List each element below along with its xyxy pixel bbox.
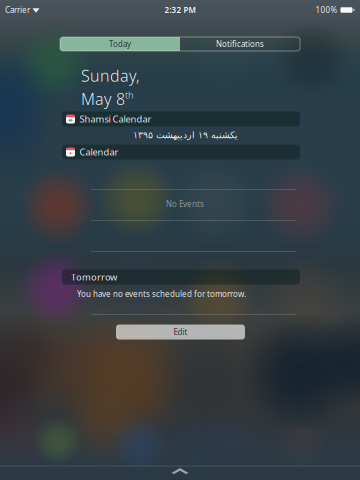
button[interactable]: Shamsi Calendar <box>62 111 300 126</box>
staticText: No Events <box>166 199 204 209</box>
button[interactable]: Today <box>60 37 180 51</box>
staticText: Sunday, <box>81 65 140 86</box>
staticText: Shamsi Calendar <box>79 113 151 125</box>
staticText: Notifications <box>216 39 264 49</box>
staticText: Carrier <box>5 5 30 15</box>
button[interactable]: Edit <box>116 324 245 339</box>
staticText: Today <box>109 39 131 49</box>
staticText: Edit <box>173 327 187 337</box>
staticText: 100% <box>315 5 337 15</box>
staticText: Tomorrow <box>71 271 117 283</box>
staticText: May 8 <box>81 88 125 109</box>
button[interactable]: Calendar <box>62 144 300 159</box>
staticText: 2:32 PM <box>164 5 195 15</box>
staticText: Calendar <box>79 146 118 158</box>
staticText: th <box>125 89 134 101</box>
staticText: یکشنبه ۱۹ اردیبهشت ۱۳۹۵ <box>132 130 237 140</box>
button[interactable]: Tomorrow <box>62 269 300 284</box>
button[interactable]: Notifications <box>180 37 300 51</box>
staticText: You have no events scheduled for tomorro… <box>77 289 246 299</box>
